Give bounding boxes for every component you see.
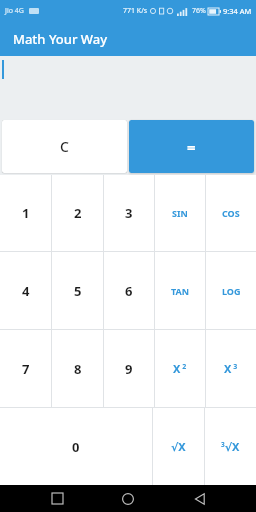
- staticText: 3√X: [221, 439, 240, 454]
- staticText: 9:34 AM: [223, 6, 252, 16]
- button[interactable]: √X: [153, 408, 204, 485]
- button[interactable]: Back: [185, 485, 215, 512]
- staticText: C: [60, 137, 69, 156]
- staticText: 7: [22, 360, 30, 378]
- staticText: √X: [171, 439, 186, 454]
- staticText: 5: [74, 282, 82, 300]
- staticText: 2: [74, 204, 82, 222]
- staticText: 4: [22, 282, 30, 300]
- button[interactable]: LOG: [206, 252, 256, 329]
- button[interactable]: COS: [206, 175, 256, 251]
- button[interactable]: 0: [0, 408, 152, 485]
- button[interactable]: 7: [0, 330, 51, 407]
- button[interactable]: 3: [104, 175, 154, 251]
- button[interactable]: Home: [113, 485, 143, 512]
- button[interactable]: C: [2, 120, 127, 173]
- button[interactable]: =: [129, 120, 254, 173]
- button[interactable]: Recent apps: [42, 485, 72, 512]
- button[interactable]: 2: [52, 175, 103, 251]
- staticText: LOG: [222, 285, 241, 297]
- staticText: Jio 4G: [5, 6, 24, 16]
- staticText: =: [187, 137, 196, 157]
- staticText: SIN: [172, 207, 188, 219]
- button[interactable]: TAN: [155, 252, 205, 329]
- staticText: 0: [72, 438, 80, 456]
- staticText: COS: [222, 207, 240, 219]
- staticText: 3: [125, 204, 133, 222]
- staticText: 771 K/s: [123, 6, 148, 16]
- staticText: 6: [125, 282, 133, 300]
- button[interactable]: SIN: [155, 175, 205, 251]
- staticText: 76%: [192, 6, 206, 16]
- staticText: 1: [22, 204, 30, 222]
- staticText: X 2: [173, 361, 187, 376]
- button[interactable]: X 2: [155, 330, 205, 407]
- button[interactable]: 9: [104, 330, 154, 407]
- staticText: 8: [74, 360, 82, 378]
- button[interactable]: 1: [0, 175, 51, 251]
- staticText: TAN: [171, 285, 190, 297]
- button[interactable]: X 3: [206, 330, 256, 407]
- button[interactable]: 5: [52, 252, 103, 329]
- staticText: 9: [125, 360, 133, 378]
- button[interactable]: 8: [52, 330, 103, 407]
- button[interactable]: 4: [0, 252, 51, 329]
- staticText: Math Your Way: [13, 30, 108, 48]
- staticText: X 3: [224, 361, 238, 376]
- button[interactable]: 6: [104, 252, 154, 329]
- button[interactable]: 3√X: [205, 408, 256, 485]
